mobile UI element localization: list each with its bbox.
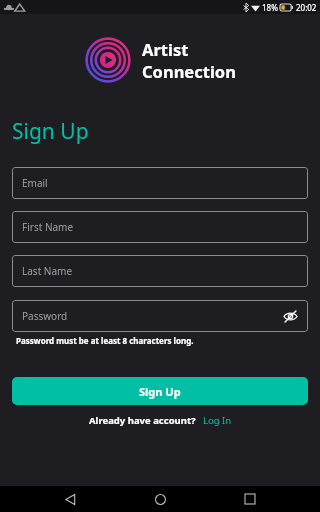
button[interactable]: Log In (203, 414, 232, 427)
staticText: Log In (203, 414, 232, 427)
staticText: Last Name (22, 264, 73, 278)
staticText: 20:02 (296, 2, 317, 13)
button[interactable]: First Name (12, 211, 308, 243)
button[interactable]: Last Name (12, 255, 308, 287)
staticText: 18% (262, 2, 278, 13)
staticText: First Name (22, 220, 74, 234)
button[interactable]: Show password (280, 306, 300, 326)
staticText: Password must be at least 8 characters l… (16, 335, 194, 346)
button[interactable]: Home (140, 486, 180, 512)
staticText: Password (22, 309, 68, 323)
button[interactable]: Recent apps (230, 486, 270, 512)
staticText: Email (22, 176, 48, 190)
button[interactable]: Email (12, 167, 308, 199)
button[interactable]: Password (12, 300, 308, 332)
staticText: Sign Up (12, 117, 89, 146)
button[interactable]: Sign Up (12, 377, 308, 405)
button[interactable]: Back (50, 486, 90, 512)
staticText: Sign Up (139, 384, 181, 399)
staticText: Artist (142, 38, 189, 60)
staticText: Connection (142, 60, 236, 82)
staticText: Already have account? (89, 414, 196, 427)
